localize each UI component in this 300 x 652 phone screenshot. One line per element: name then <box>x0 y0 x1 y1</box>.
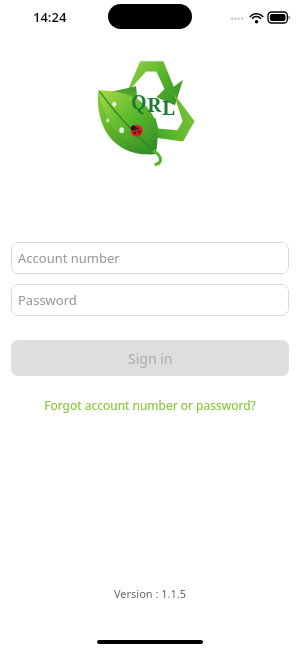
other: QRL recycling logo <box>92 49 208 165</box>
staticText: Password <box>18 291 77 309</box>
staticText: R <box>147 91 162 118</box>
staticText: Q <box>131 88 147 115</box>
staticText: 14:24 <box>33 8 67 26</box>
staticText: L <box>162 94 176 121</box>
staticText: Sign in <box>128 349 173 368</box>
staticText: Version : 1.1.5 <box>0 586 300 601</box>
staticText: Account number <box>18 249 120 267</box>
button[interactable]: Forgot account number or password? <box>0 397 300 413</box>
staticText: Forgot account number or password? <box>44 397 256 413</box>
button[interactable]: Account number <box>11 242 289 274</box>
button[interactable]: Password <box>11 284 289 316</box>
button[interactable]: Sign in <box>11 340 289 376</box>
